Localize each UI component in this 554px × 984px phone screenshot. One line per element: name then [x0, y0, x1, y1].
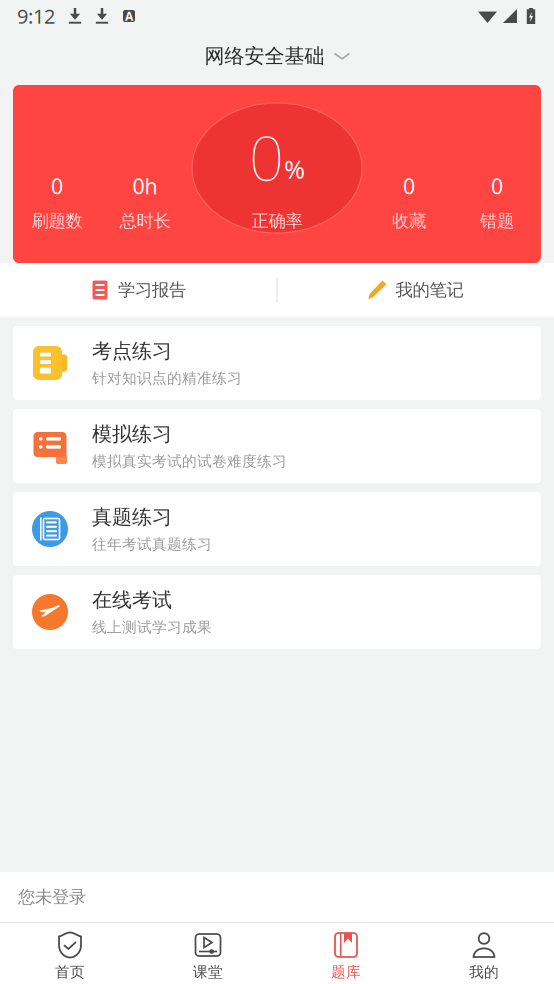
- staticText: 针对知识点的精准练习: [92, 369, 242, 387]
- staticText: 模拟真实考试的试卷难度练习: [92, 452, 287, 470]
- staticText: 正确率: [251, 210, 302, 232]
- staticText: 模拟练习: [92, 422, 172, 446]
- staticText: 0: [403, 172, 415, 200]
- button[interactable]: 真题练习: [13, 492, 541, 566]
- button[interactable]: 我的: [415, 923, 553, 984]
- staticText: 真题练习: [92, 505, 172, 529]
- staticText: 您未登录: [18, 886, 86, 908]
- staticText: 题库: [331, 963, 361, 981]
- staticText: 收藏: [392, 210, 426, 232]
- staticText: 我的: [469, 963, 499, 981]
- staticText: 考点练习: [92, 339, 172, 363]
- staticText: 0: [249, 116, 284, 198]
- staticText: 学习报告: [118, 279, 186, 301]
- staticText: 线上测试学习成果: [92, 618, 212, 636]
- button[interactable]: 学习报告: [0, 263, 277, 317]
- staticText: 0: [51, 172, 63, 200]
- button[interactable]: 题库: [277, 923, 415, 984]
- staticText: 在线考试: [92, 588, 172, 612]
- staticText: 刷题数: [31, 210, 82, 232]
- staticText: 网络安全基础: [204, 44, 324, 68]
- staticText: 0h: [132, 172, 157, 200]
- staticText: 总时长: [119, 210, 170, 232]
- button[interactable]: 我的笔记: [277, 263, 554, 317]
- button[interactable]: 考点练习: [13, 326, 541, 400]
- button[interactable]: 您未登录: [0, 872, 554, 922]
- staticText: 首页: [55, 963, 85, 981]
- staticText: A: [125, 8, 133, 24]
- button[interactable]: 课堂: [139, 923, 277, 984]
- staticText: 错题: [480, 210, 514, 232]
- staticText: 往年考试真题练习: [92, 535, 212, 553]
- button[interactable]: 在线考试: [13, 575, 541, 649]
- staticText: %: [284, 152, 305, 186]
- button[interactable]: 模拟练习: [13, 409, 541, 483]
- staticText: 9:12: [17, 3, 55, 29]
- staticText: 我的笔记: [395, 279, 463, 301]
- button[interactable]: 首页: [1, 923, 139, 984]
- staticText: 课堂: [193, 963, 223, 981]
- button[interactable]: 网络安全基础: [0, 32, 554, 80]
- staticText: [274, 172, 280, 200]
- staticText: 0: [491, 172, 503, 200]
